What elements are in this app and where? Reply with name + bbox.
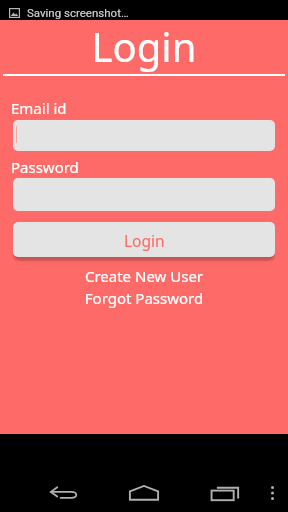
button[interactable] — [13, 178, 275, 211]
button[interactable]: Login — [13, 222, 275, 257]
button[interactable]: More options — [252, 469, 288, 512]
button[interactable]: Recents — [201, 469, 249, 512]
button[interactable]: Home — [120, 469, 168, 512]
staticText: Login — [0, 19, 288, 73]
button[interactable]: Back — [40, 469, 88, 512]
staticText: Password — [11, 157, 79, 177]
staticText: Saving screenshot… — [27, 6, 129, 19]
staticText: Email id — [11, 98, 67, 118]
button[interactable]: Create New User — [0, 266, 288, 286]
button[interactable]: Forgot Password — [0, 288, 288, 308]
button[interactable] — [13, 120, 275, 151]
staticText: Login — [124, 230, 165, 251]
